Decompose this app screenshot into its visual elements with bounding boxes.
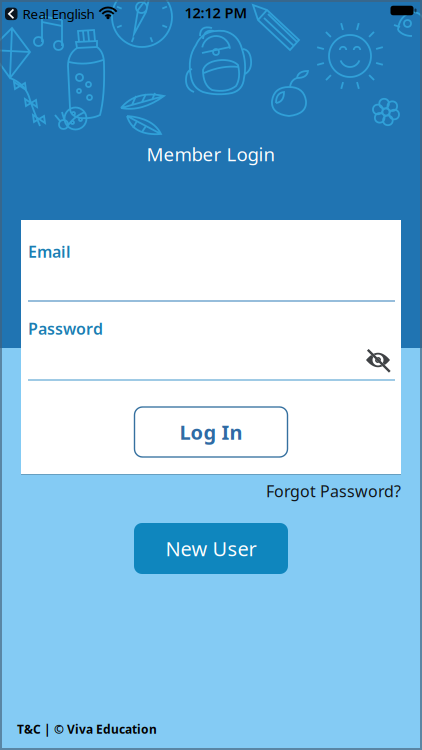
button[interactable]: Log In [134,407,287,457]
staticText: Real English [22,5,94,23]
staticText: Log In [179,419,242,445]
staticText: Password [28,318,103,339]
button[interactable] [363,346,393,374]
button[interactable]: New User [134,523,288,574]
button[interactable] [28,241,395,301]
staticText: New User [165,535,256,562]
staticText: Member Login [146,142,275,166]
staticText: T&C | © Viva Education [17,721,157,737]
button[interactable]: Real English [5,5,94,23]
button[interactable]: Forgot Password? [266,480,401,502]
staticText: Forgot Password? [266,480,401,502]
staticText: 12:12 PM [184,3,247,22]
staticText: Email [28,241,71,262]
button[interactable] [28,320,358,380]
